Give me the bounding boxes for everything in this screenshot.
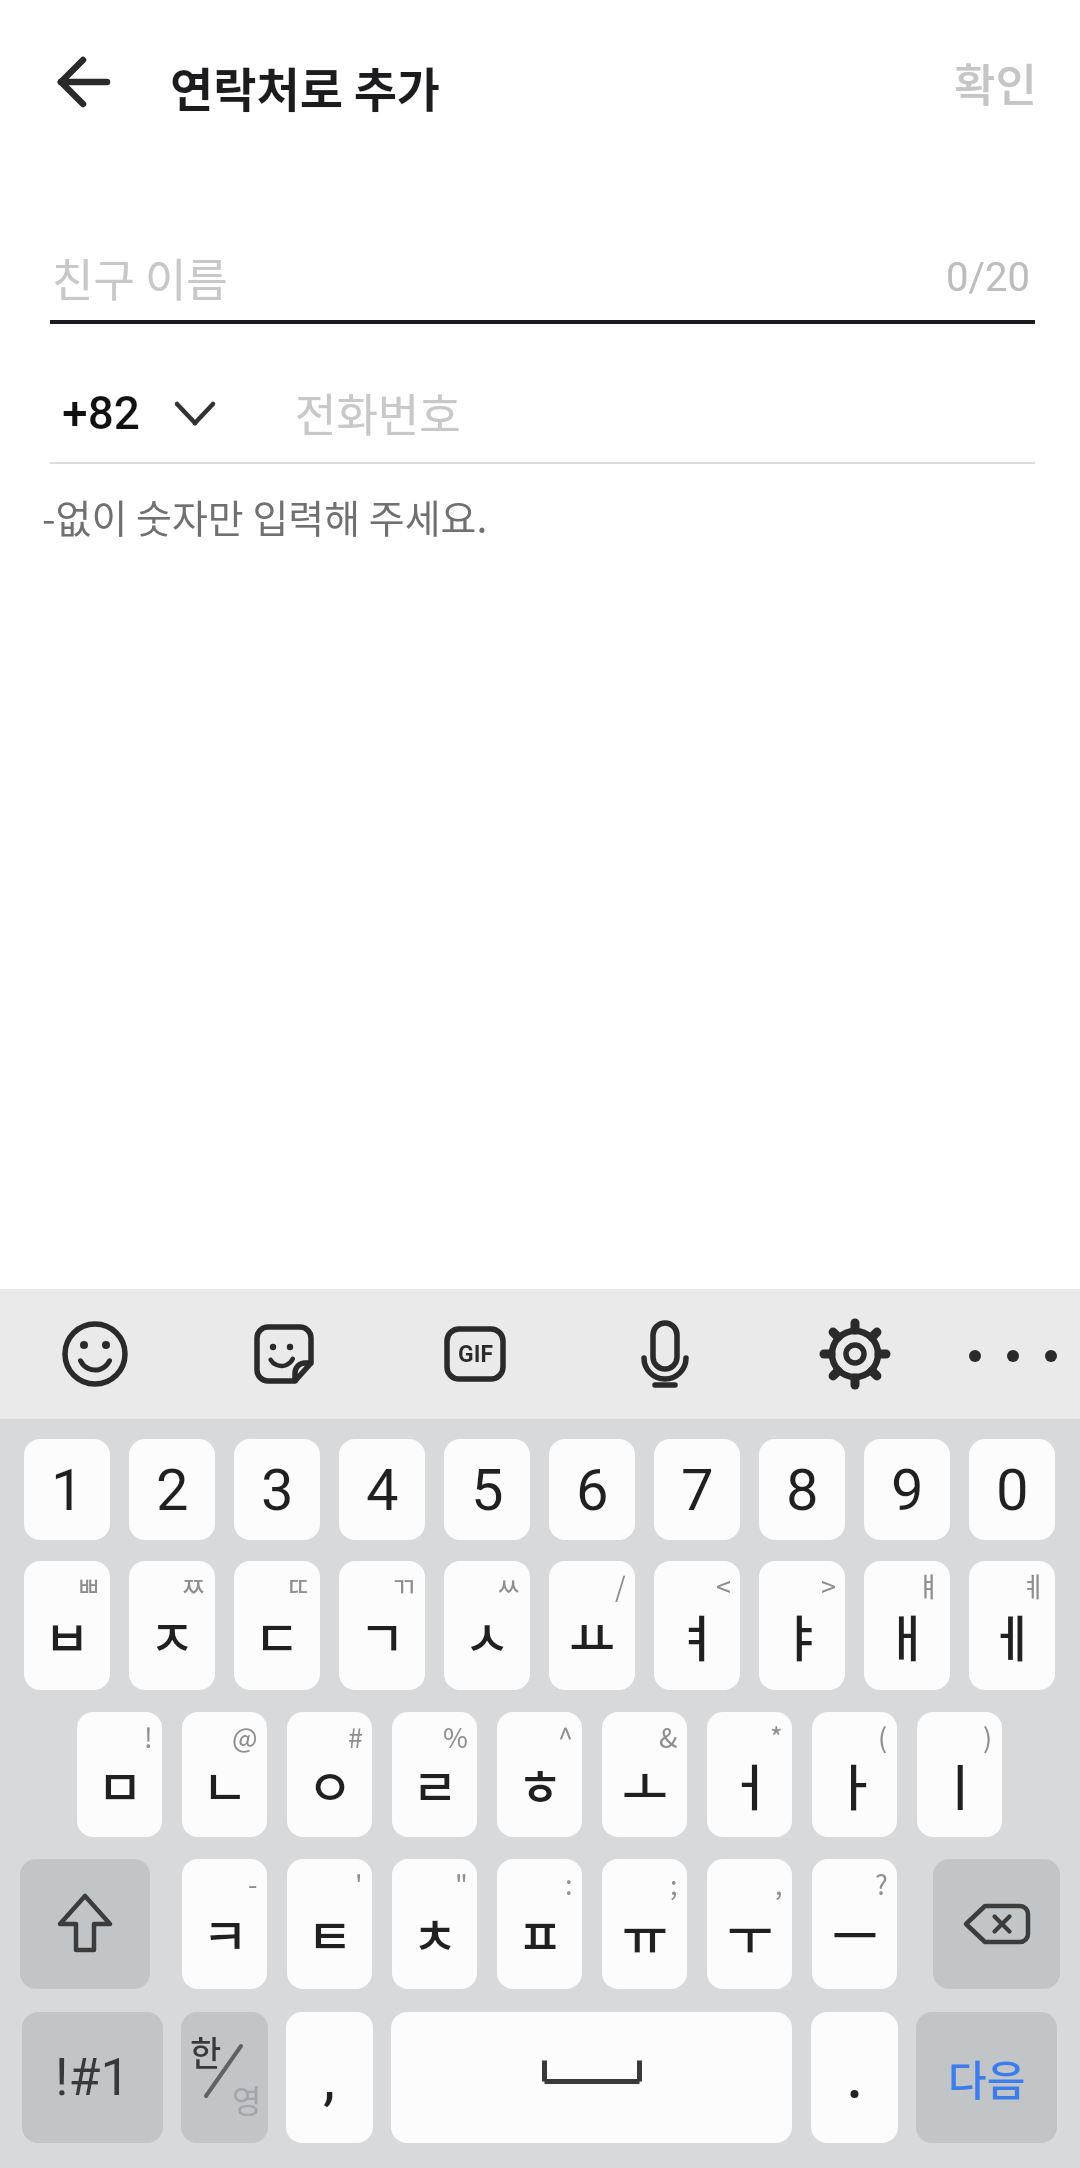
button[interactable]: ㅌ [287, 1859, 372, 1989]
staticText: !#1 [55, 2047, 130, 2108]
button[interactable]: ㅍ [497, 1859, 582, 1989]
staticText: ) [983, 1717, 993, 1756]
button[interactable]: ㅜ [707, 1859, 792, 1989]
staticText: 1 [51, 1456, 84, 1524]
staticText: ㅕ [674, 1599, 720, 1671]
button[interactable]: ㅁ [77, 1712, 162, 1837]
button[interactable]: GIF [420, 1299, 530, 1409]
button[interactable]: 9 [864, 1439, 950, 1540]
staticText: ㅜ [727, 1897, 773, 1969]
button[interactable]: 8 [759, 1439, 845, 1540]
staticText: @ [232, 1717, 258, 1756]
button[interactable]: ㅂ [24, 1561, 110, 1690]
button[interactable]: ㅠ [602, 1859, 687, 1989]
button[interactable]: 6 [549, 1439, 635, 1540]
button[interactable] [958, 1301, 1068, 1411]
button[interactable]: ㅓ [707, 1712, 792, 1837]
staticText: / [615, 1566, 626, 1605]
staticText: - [248, 1864, 258, 1903]
staticText: ㅎ [517, 1748, 563, 1820]
staticText: ㅉ [181, 1566, 206, 1605]
button[interactable]: ㅡ [812, 1859, 897, 1989]
button[interactable] [610, 1299, 720, 1409]
button[interactable]: 친구 이름 [50, 230, 1035, 324]
button[interactable]: ㅐ [864, 1561, 950, 1690]
button[interactable]: ㄴ [182, 1712, 267, 1837]
staticText: ㄱ [359, 1599, 405, 1671]
staticText: ㄸ [286, 1566, 311, 1605]
staticText: 영 [232, 2076, 262, 2122]
staticText: 3 [261, 1456, 294, 1524]
button[interactable] [229, 1299, 339, 1409]
button[interactable]: 2 [129, 1439, 215, 1540]
button[interactable]: 0 [969, 1439, 1055, 1540]
button[interactable]: ㅋ [182, 1859, 267, 1989]
button[interactable]: ㅅ [444, 1561, 530, 1690]
button[interactable]: 1 [24, 1439, 110, 1540]
staticText: : [565, 1864, 573, 1903]
staticText: * [770, 1717, 783, 1756]
staticText: ㅃ [76, 1566, 101, 1605]
staticText: , [323, 2041, 336, 2114]
button[interactable] [800, 1299, 910, 1409]
button[interactable]: ㅇ [287, 1712, 372, 1837]
button[interactable]: 한 [181, 2012, 268, 2143]
staticText: # [348, 1717, 363, 1756]
button[interactable]: 전화번호 [280, 375, 1035, 450]
staticText: 연락처로 추가 [170, 52, 441, 120]
button[interactable]: 다음 [916, 2012, 1057, 2143]
button[interactable]: 7 [654, 1439, 740, 1540]
staticText: 0/20 [946, 254, 1030, 301]
staticText: > [821, 1566, 836, 1605]
button[interactable]: ㅑ [759, 1561, 845, 1690]
button[interactable]: 3 [234, 1439, 320, 1540]
staticText: ㅣ [937, 1748, 983, 1820]
button[interactable]: ㅊ [392, 1859, 477, 1989]
button[interactable]: ㅈ [129, 1561, 215, 1690]
button[interactable]: ㄹ [392, 1712, 477, 1837]
button[interactable] [811, 2012, 898, 2143]
staticText: , [775, 1864, 783, 1903]
staticText: ㅛ [569, 1599, 615, 1671]
button[interactable] [40, 1299, 150, 1409]
staticText: ㅂ [44, 1599, 90, 1671]
button[interactable]: ㅛ [549, 1561, 635, 1690]
staticText: ㅗ [622, 1748, 668, 1820]
button[interactable]: ㅎ [497, 1712, 582, 1837]
button[interactable]: ㅗ [602, 1712, 687, 1837]
staticText: 6 [576, 1456, 609, 1524]
staticText: ㄹ [412, 1748, 458, 1820]
button[interactable]: ㅔ [969, 1561, 1055, 1690]
staticText: ㅒ [916, 1566, 941, 1605]
staticText: ㅓ [727, 1748, 773, 1820]
staticText: ㅏ [832, 1748, 878, 1820]
staticText: & [659, 1717, 678, 1756]
button[interactable] [933, 1859, 1060, 1989]
button[interactable]: !#1 [22, 2012, 163, 2143]
staticText: ㅑ [779, 1599, 825, 1671]
staticText: ㅆ [496, 1566, 521, 1605]
button[interactable]: ㅕ [654, 1561, 740, 1690]
button[interactable]: ㄷ [234, 1561, 320, 1690]
button[interactable]: ㅏ [812, 1712, 897, 1837]
staticText: 확인 [954, 50, 1037, 115]
button[interactable]: 4 [339, 1439, 425, 1540]
staticText: GIF [458, 1341, 493, 1368]
button[interactable] [40, 40, 128, 124]
staticText: ( [878, 1717, 888, 1756]
button[interactable] [20, 1859, 150, 1989]
staticText: ㅠ [622, 1897, 668, 1969]
staticText: 5 [471, 1456, 504, 1524]
button[interactable] [391, 2012, 792, 2143]
button[interactable]: 확인 [930, 40, 1060, 124]
staticText: 다음 [948, 2047, 1026, 2108]
staticText: ㅅ [464, 1599, 510, 1671]
button[interactable]: 5 [444, 1439, 530, 1540]
staticText: 0 [996, 1456, 1029, 1524]
button[interactable]: ㄱ [339, 1561, 425, 1690]
button[interactable]: ㅣ [917, 1712, 1002, 1837]
staticText: ㅡ [832, 1897, 878, 1969]
button[interactable]: , [286, 2012, 373, 2143]
staticText: ㅊ [412, 1897, 458, 1969]
button[interactable]: +82 [50, 375, 230, 450]
